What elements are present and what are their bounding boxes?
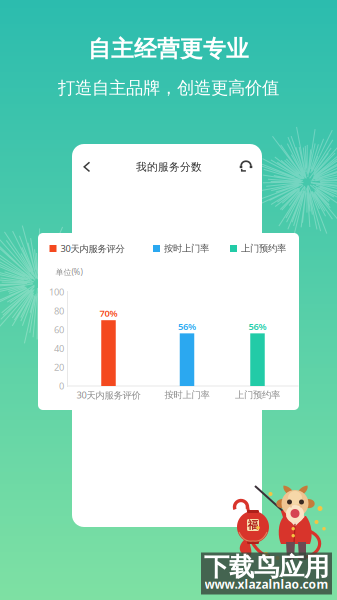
staticText: 80: [54, 305, 64, 317]
staticText: 40: [54, 342, 64, 355]
staticText: www.xlazalnlao.com: [204, 576, 328, 592]
staticText: 按时上门率: [164, 243, 209, 254]
staticText: 30天内服务评价: [76, 389, 140, 401]
staticText: 70%: [99, 307, 117, 319]
button[interactable]: Customer service: [235, 155, 257, 177]
button[interactable]: Back: [76, 156, 98, 178]
staticText: 20: [54, 361, 64, 373]
staticText: 100: [49, 286, 64, 298]
staticText: 我的服务分数: [136, 160, 202, 173]
staticText: 上门预约率: [241, 243, 286, 254]
staticText: 0: [59, 380, 64, 392]
staticText: 56%: [178, 320, 196, 333]
staticText: 按时上门率: [164, 389, 209, 401]
staticText: 单位(%): [55, 267, 82, 277]
staticText: 打造自主品牌，创造更高价值: [58, 77, 279, 99]
staticText: 福: [247, 518, 258, 531]
staticText: 60: [54, 323, 64, 336]
staticText: 56%: [248, 320, 266, 333]
staticText: 30天内服务评分: [60, 242, 124, 255]
staticText: 上门预约率: [235, 389, 280, 401]
staticText: 自主经营更专业: [88, 35, 249, 63]
staticText: 下载鸟应用: [204, 551, 329, 582]
